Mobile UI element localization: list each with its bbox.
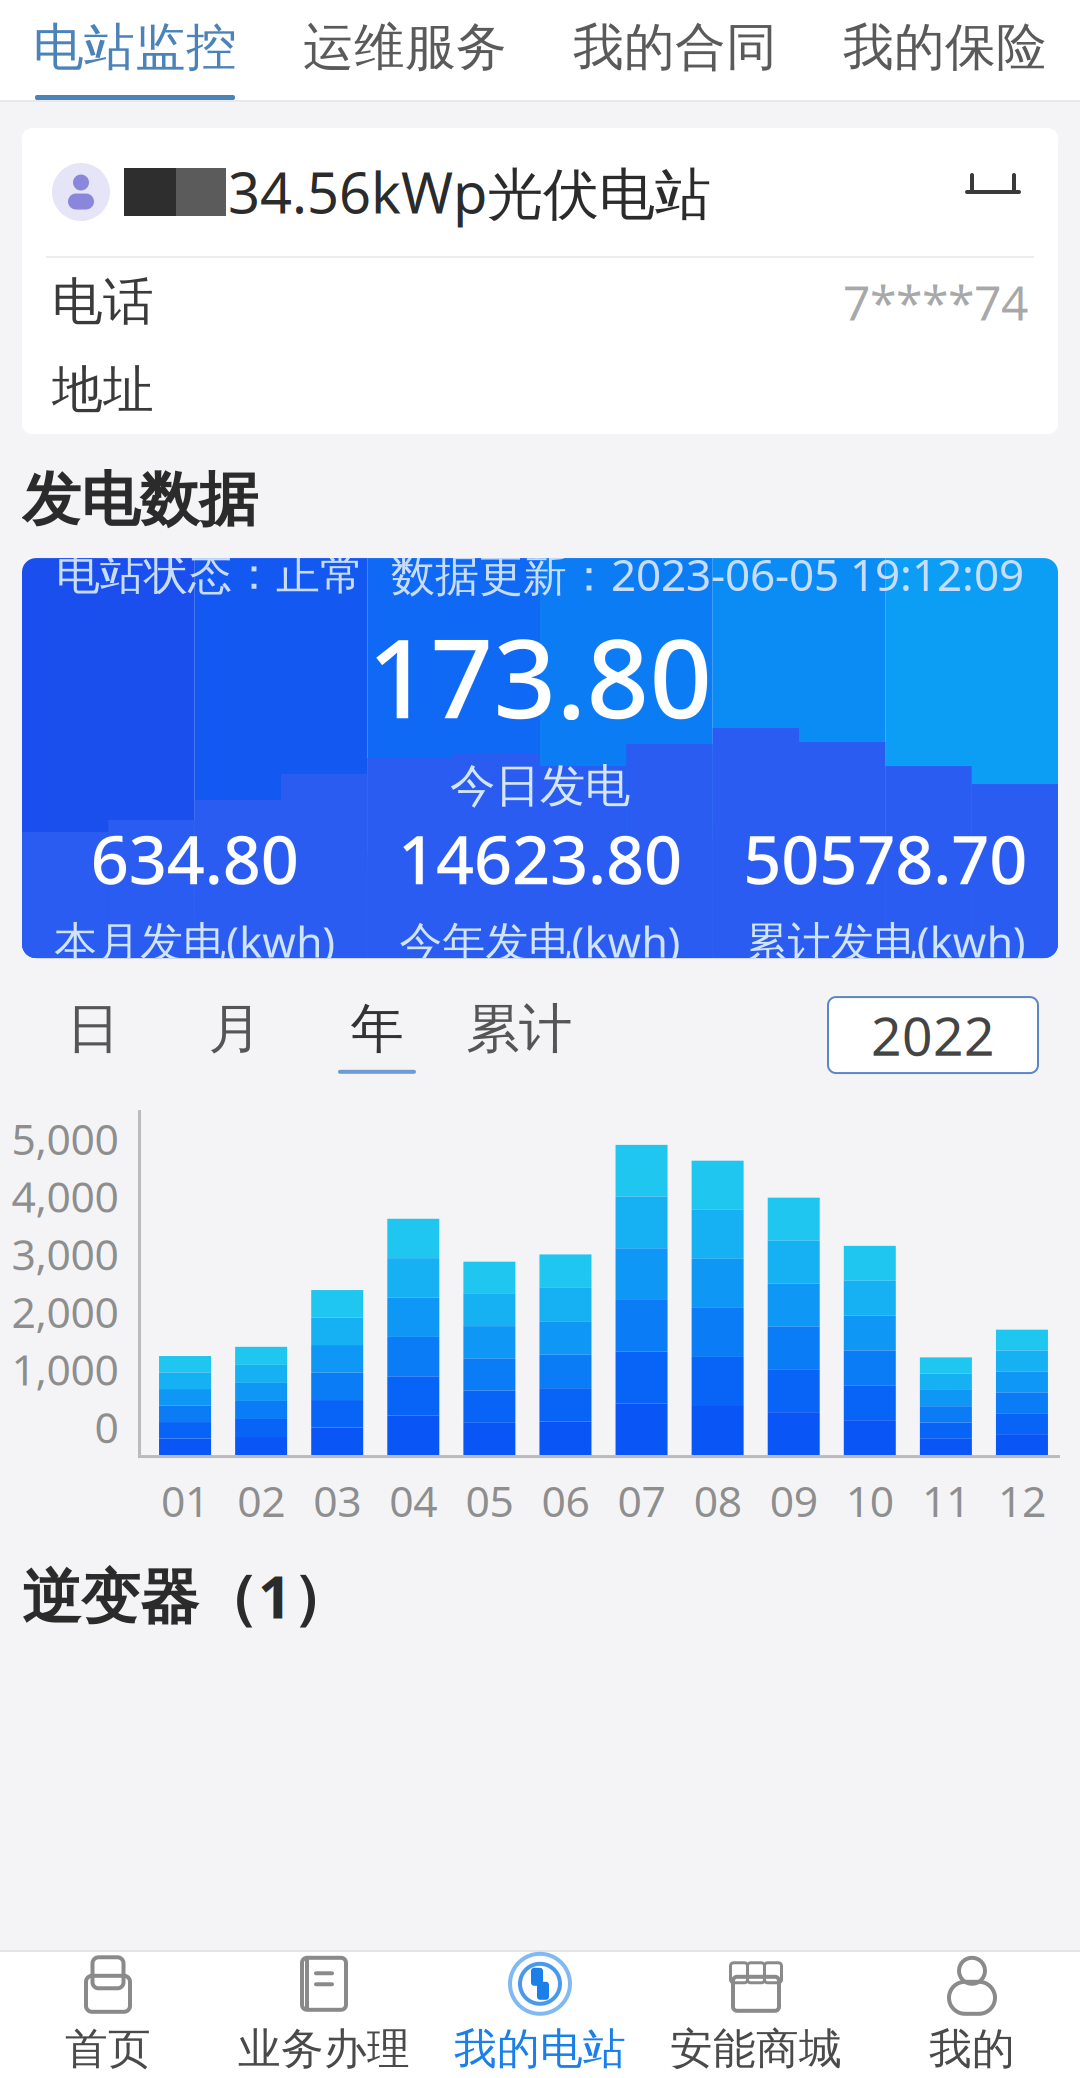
staticText: 逆变器（1） bbox=[22, 1557, 351, 1635]
staticText: 02 bbox=[237, 1472, 285, 1529]
staticText: 安能商城 bbox=[670, 2023, 842, 2075]
button[interactable]: 安能商城 bbox=[648, 1952, 864, 2078]
staticText: 今日发电 bbox=[450, 758, 630, 814]
staticText: 电站状态：正常 bbox=[56, 547, 364, 601]
button[interactable]: 月 bbox=[164, 985, 306, 1085]
staticText: 0 bbox=[94, 1398, 118, 1455]
staticText: 今年发电(kwh) bbox=[399, 913, 680, 969]
staticText: 03 bbox=[313, 1472, 361, 1529]
staticText: 我的合同 bbox=[573, 16, 777, 79]
staticText: 首页 bbox=[65, 2023, 151, 2075]
staticText: 4,000 bbox=[11, 1168, 118, 1224]
button[interactable]: 电站监控 bbox=[0, 0, 270, 100]
button[interactable]: 我的 bbox=[864, 1952, 1080, 2078]
staticText: 10 bbox=[846, 1472, 894, 1529]
button[interactable]: 隐藏信息 bbox=[958, 157, 1028, 227]
staticText: 电站监控 bbox=[33, 16, 237, 79]
staticText: 3,000 bbox=[11, 1225, 118, 1282]
staticText: 04 bbox=[389, 1472, 437, 1529]
staticText: 34.56kWp光伏电站 bbox=[228, 155, 711, 229]
staticText: 14623.80 bbox=[398, 814, 682, 903]
staticText: 50578.70 bbox=[743, 814, 1027, 903]
button[interactable]: 我的电站 bbox=[432, 1952, 648, 2078]
button[interactable]: 我的保险 bbox=[810, 0, 1080, 100]
button[interactable]: 日 bbox=[22, 985, 164, 1085]
staticText: 数据更新：2023-06-05 19:12:09 bbox=[391, 545, 1024, 603]
button[interactable]: 2022 bbox=[828, 997, 1038, 1073]
staticText: 我的保险 bbox=[843, 16, 1047, 79]
staticText: 12 bbox=[998, 1472, 1046, 1529]
button[interactable]: 年 bbox=[306, 985, 448, 1085]
staticText: 05 bbox=[465, 1472, 513, 1529]
staticText: 634.80 bbox=[91, 814, 299, 903]
staticText: 2,000 bbox=[11, 1283, 118, 1340]
staticText: 地址 bbox=[52, 359, 154, 421]
staticText: 08 bbox=[694, 1472, 742, 1529]
staticText: 11 bbox=[922, 1472, 970, 1529]
staticText: 01 bbox=[161, 1472, 209, 1529]
staticText: 电话 bbox=[52, 271, 154, 333]
staticText: 1,000 bbox=[11, 1341, 118, 1397]
staticText: 累计 bbox=[466, 996, 572, 1062]
button[interactable]: 首页 bbox=[0, 1952, 216, 2078]
staticText: 业务办理 bbox=[238, 2023, 410, 2075]
button[interactable]: 累计 bbox=[448, 985, 590, 1085]
staticText: 我的 bbox=[929, 2023, 1015, 2075]
staticText: 07 bbox=[617, 1472, 665, 1529]
button[interactable]: 运维服务 bbox=[270, 0, 540, 100]
staticText: 2022 bbox=[871, 1000, 995, 1070]
staticText: 09 bbox=[770, 1472, 818, 1529]
staticText: 累计发电(kwh) bbox=[745, 913, 1026, 969]
staticText: 月 bbox=[208, 996, 261, 1062]
staticText: 173.80 bbox=[367, 603, 712, 748]
staticText: 我的电站 bbox=[454, 2023, 626, 2075]
button[interactable]: 我的合同 bbox=[540, 0, 810, 100]
staticText: 7****74 bbox=[843, 270, 1028, 334]
button[interactable]: 业务办理 bbox=[216, 1952, 432, 2078]
staticText: 5,000 bbox=[11, 1110, 118, 1167]
staticText: 日 bbox=[66, 996, 119, 1062]
staticText: 年 bbox=[350, 996, 403, 1062]
staticText: 发电数据 bbox=[22, 464, 258, 536]
staticText: 本月发电(kwh) bbox=[54, 913, 335, 969]
staticText: 06 bbox=[541, 1472, 589, 1529]
staticText: 运维服务 bbox=[303, 16, 507, 79]
